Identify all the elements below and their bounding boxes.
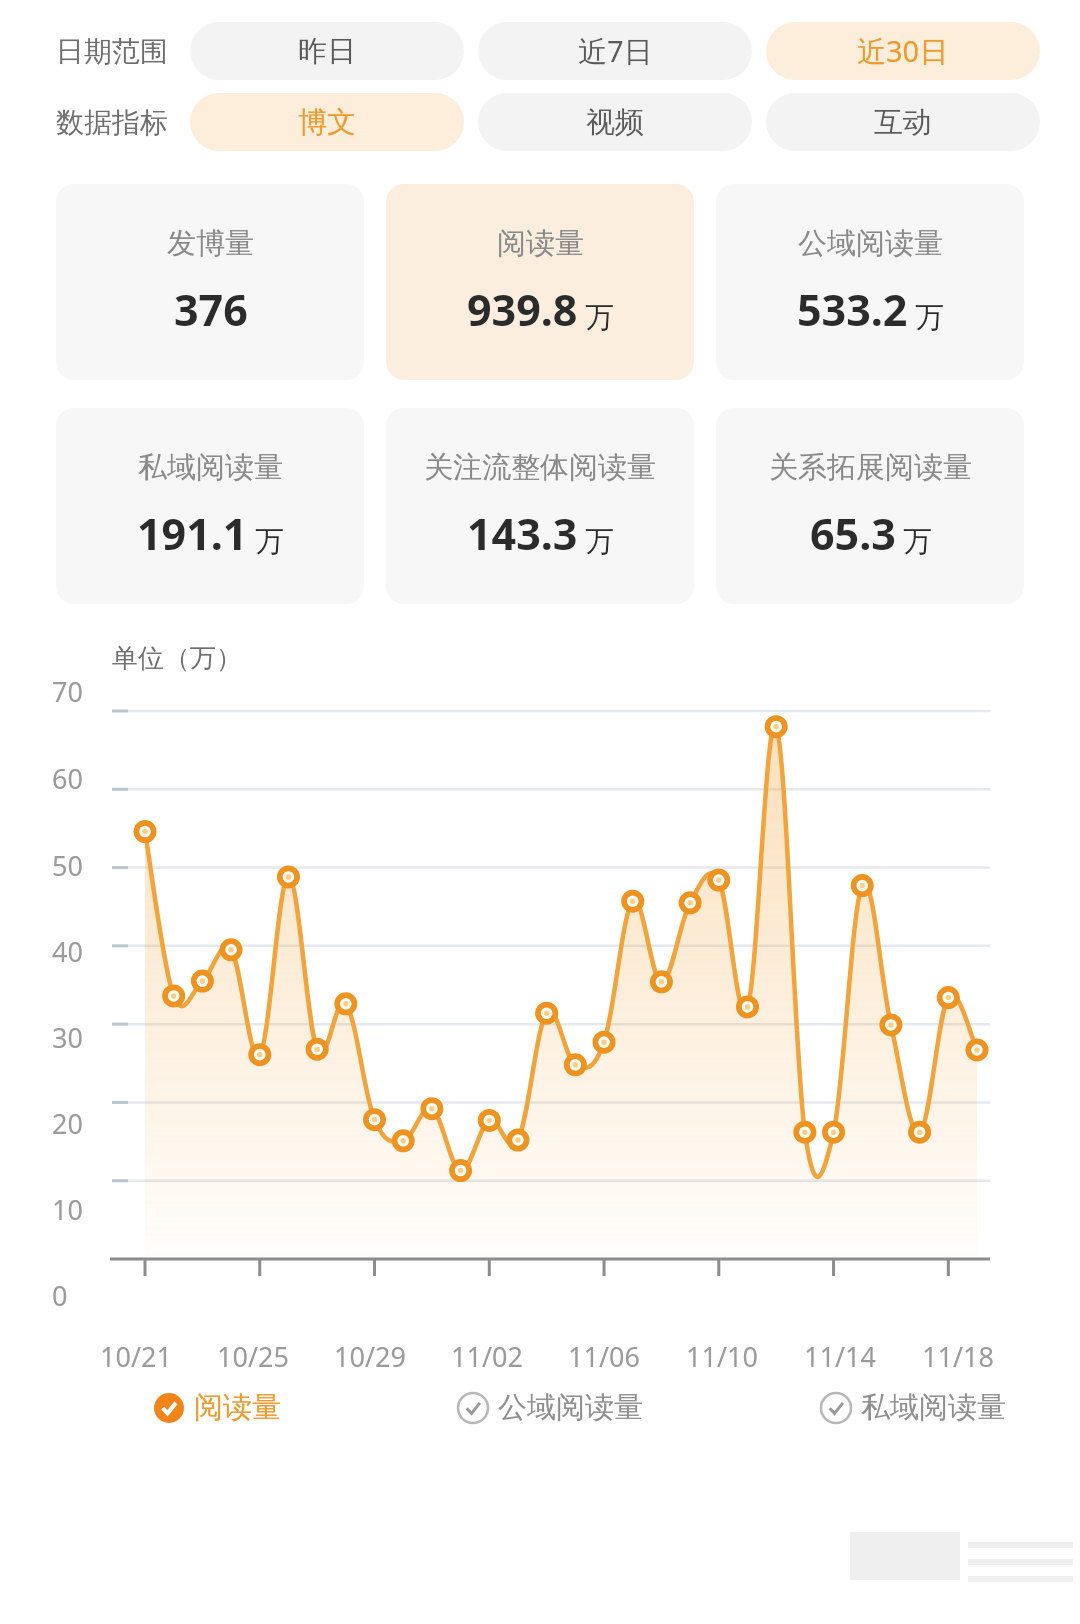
button[interactable]: 关注流整体阅读量 <box>386 408 694 604</box>
staticText: 互动 <box>874 104 932 141</box>
button[interactable]: 近7日 <box>478 22 752 80</box>
staticText: 公域阅读量 <box>798 225 943 262</box>
button[interactable]: 私域阅读量 <box>56 408 364 604</box>
staticText: 近30日 <box>857 31 949 71</box>
staticText: 20 <box>52 1105 83 1142</box>
staticText: 昨日 <box>298 33 356 70</box>
staticText: 近7日 <box>578 31 653 71</box>
button[interactable]: 博文 <box>190 93 464 151</box>
staticText: 70 <box>52 673 83 710</box>
staticText: 143.3 <box>467 504 578 563</box>
staticText: 60 <box>52 760 83 797</box>
staticText: 11/02 <box>451 1338 523 1375</box>
staticText: 10 <box>52 1191 83 1228</box>
button[interactable]: 昨日 <box>190 22 464 80</box>
staticText: 发博量 <box>167 225 254 262</box>
staticText: 11/14 <box>804 1338 876 1375</box>
staticText: 11/06 <box>568 1338 640 1375</box>
staticText: 万 <box>915 299 944 336</box>
staticText: 10/29 <box>334 1338 406 1375</box>
staticText: 40 <box>52 933 83 970</box>
staticText: 单位（万） <box>112 642 242 675</box>
button[interactable]: 视频 <box>478 93 752 151</box>
button[interactable]: 阅读量 <box>386 184 694 380</box>
staticText: 939.8 <box>467 280 578 339</box>
staticText: 万 <box>585 523 614 560</box>
staticText: 11/10 <box>686 1338 758 1375</box>
staticText: 私域阅读量 <box>138 449 283 486</box>
staticText: 0 <box>52 1277 68 1314</box>
staticText: 10/21 <box>100 1338 172 1375</box>
staticText: 万 <box>903 523 932 560</box>
staticText: 关系拓展阅读量 <box>769 449 972 486</box>
staticText: 博文 <box>298 104 356 141</box>
staticText: 公域阅读量 <box>498 1389 643 1426</box>
staticText: 数据指标 <box>56 105 168 140</box>
button[interactable]: 关系拓展阅读量 <box>716 408 1024 604</box>
staticText: 533.2 <box>797 280 908 339</box>
button[interactable]: 公域阅读量 <box>452 1385 647 1430</box>
button[interactable]: 近30日 <box>766 22 1040 80</box>
staticText: 私域阅读量 <box>861 1389 1006 1426</box>
staticText: 65.3 <box>810 504 896 563</box>
staticText: 10/25 <box>217 1338 289 1375</box>
staticText: 50 <box>52 847 83 884</box>
staticText: 视频 <box>586 104 644 141</box>
button[interactable]: 私域阅读量 <box>815 1385 1010 1430</box>
staticText: 万 <box>585 299 614 336</box>
staticText: 376 <box>174 280 248 339</box>
button[interactable]: 互动 <box>766 93 1040 151</box>
staticText: 阅读量 <box>194 1389 281 1426</box>
staticText: 191.1 <box>137 504 248 563</box>
staticText: 30 <box>52 1019 83 1056</box>
staticText: 日期范围 <box>56 34 168 69</box>
staticText: 11/18 <box>922 1338 994 1375</box>
button[interactable]: 阅读量 <box>148 1385 285 1430</box>
button[interactable]: 公域阅读量 <box>716 184 1024 380</box>
staticText: 关注流整体阅读量 <box>424 449 656 486</box>
staticText: 万 <box>255 523 284 560</box>
staticText: 阅读量 <box>497 225 584 262</box>
button[interactable]: 发博量 <box>56 184 364 380</box>
